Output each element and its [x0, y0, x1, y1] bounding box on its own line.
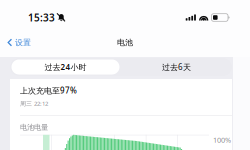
- staticText: 电池电量: [20, 123, 48, 132]
- button[interactable]: 过去6天: [121, 58, 232, 76]
- staticText: 15:33: [28, 11, 55, 24]
- staticText: 电池: [117, 37, 133, 48]
- button[interactable]: 设置: [0, 36, 37, 49]
- staticText: 100%: [213, 135, 231, 145]
- staticText: 上次充电至97%: [20, 85, 77, 96]
- staticText: 过去24小时: [44, 62, 86, 72]
- staticText: 设置: [15, 37, 31, 48]
- button[interactable]: 过去24小时: [10, 58, 121, 76]
- staticText: 周三 22:12: [20, 99, 48, 108]
- staticText: 过去6天: [162, 62, 191, 72]
